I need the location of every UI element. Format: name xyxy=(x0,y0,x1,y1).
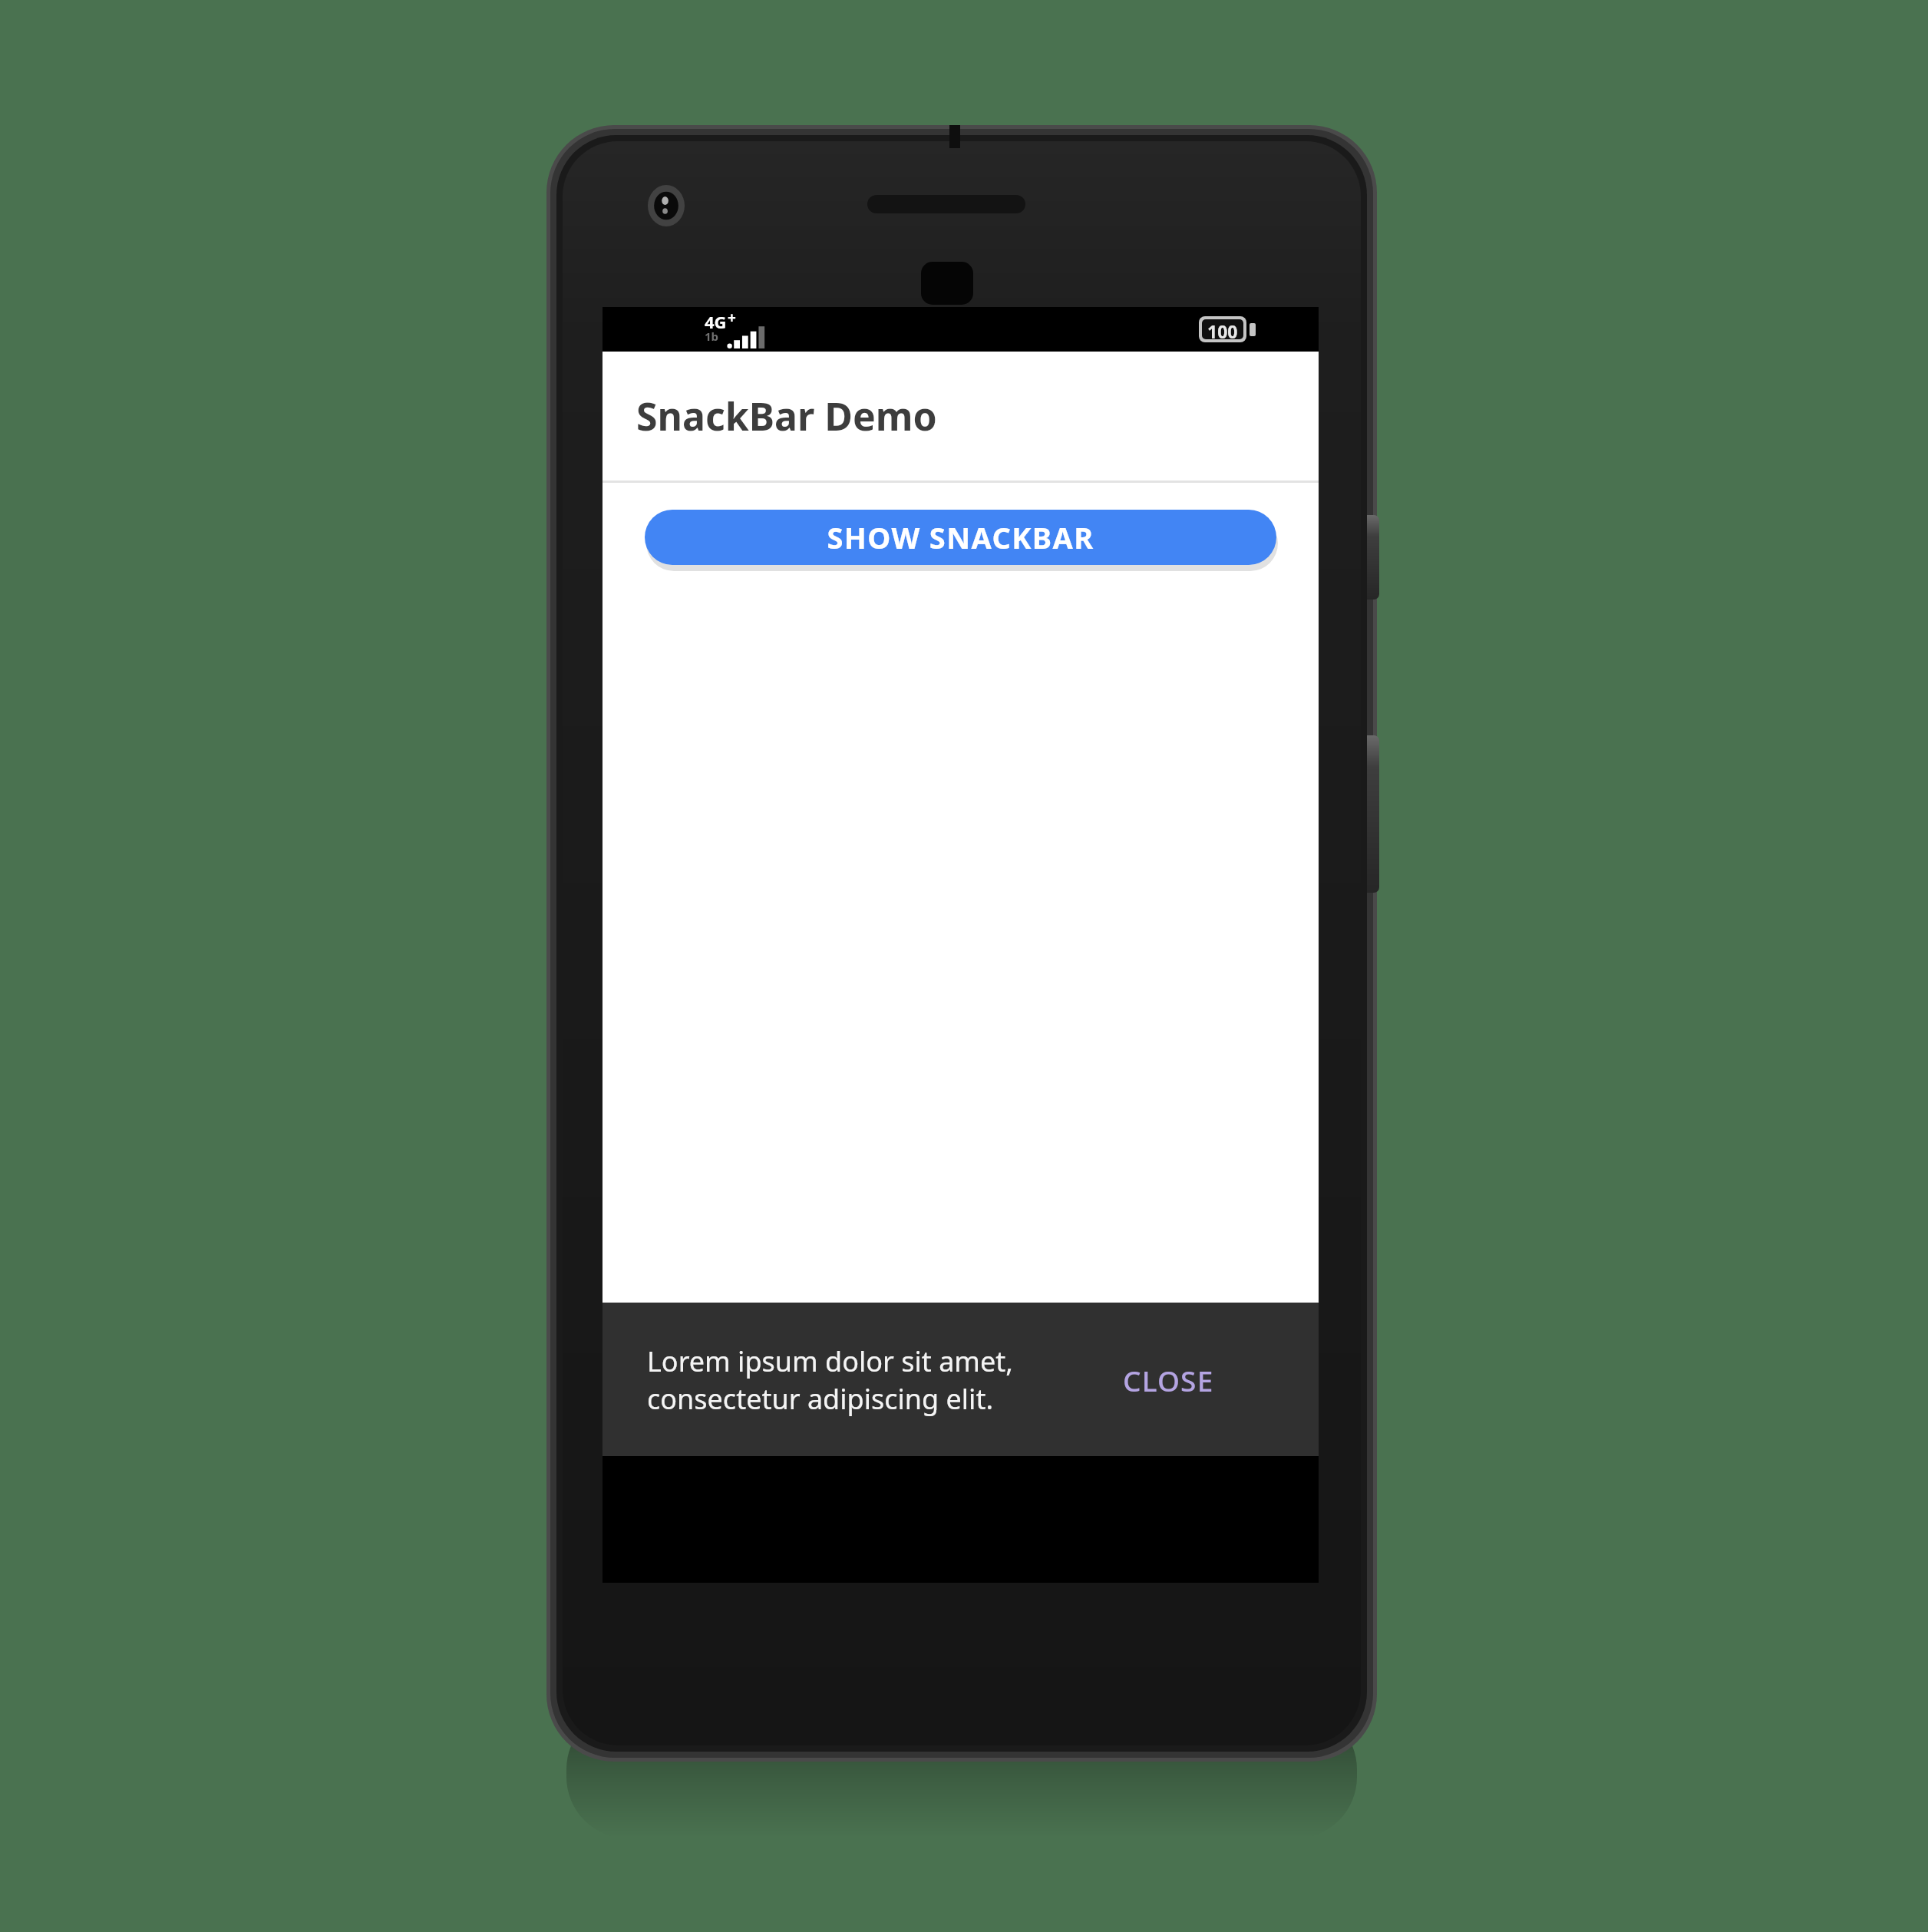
staticText: + xyxy=(728,308,736,328)
staticText: 1b xyxy=(705,329,719,344)
staticText: 100 xyxy=(1207,319,1238,339)
staticText: SHOW SNACKBAR xyxy=(827,517,1094,557)
button[interactable]: Lorem ipsum dolor sit amet, consectetur … xyxy=(602,1303,1319,1456)
other: Volume button xyxy=(1367,735,1379,893)
staticText: Lorem ipsum dolor sit amet, consectetur … xyxy=(647,1342,1108,1417)
staticText: CLOSE xyxy=(1123,1361,1214,1399)
button[interactable]: SHOW SNACKBAR xyxy=(645,510,1276,565)
staticText: 4G xyxy=(705,310,727,333)
other: Power button xyxy=(1367,515,1379,599)
button[interactable]: CLOSE xyxy=(1108,1350,1230,1410)
staticText: SnackBar Demo xyxy=(636,390,937,442)
